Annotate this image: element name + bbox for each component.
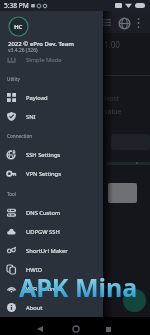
- staticText: Utility: [7, 76, 20, 82]
- staticText: Host: [104, 94, 120, 104]
- button[interactable]: Back: [30, 320, 49, 335]
- staticText: ShortUrl Maker: [26, 247, 68, 255]
- staticText: 5:38 PM: [4, 1, 29, 10]
- staticText: HC: [14, 23, 23, 31]
- staticText: WiFi Settings: [26, 285, 61, 293]
- button[interactable]: Action: [108, 183, 137, 203]
- staticText: SNI: [26, 113, 36, 121]
- button[interactable]: Recents: [99, 320, 118, 335]
- staticText: 2022 © ePro Dev. Team: [8, 40, 74, 48]
- staticText: About: [26, 304, 43, 312]
- button[interactable]: DNS Custom: [0, 203, 103, 222]
- staticText: Simple Mode: [26, 56, 62, 64]
- staticText: Payload: [26, 94, 48, 102]
- button[interactable]: Menu: [101, 17, 112, 28]
- button[interactable]: Home: [66, 320, 85, 335]
- staticText: APK Mina: [19, 270, 138, 304]
- button[interactable]: ShortUrl Maker: [0, 241, 103, 260]
- button[interactable]: About: [0, 298, 103, 317]
- button[interactable]: WiFi Settings: [0, 279, 103, 298]
- staticText: v3.4.26 (326): [8, 47, 38, 54]
- button[interactable]: Connect: [123, 289, 146, 312]
- staticText: DNS Custom: [26, 209, 61, 217]
- button[interactable]: Language: [118, 17, 131, 30]
- staticText: Connection: [7, 133, 33, 139]
- button[interactable]: SSH Settings: [0, 145, 103, 164]
- button[interactable]: Payload: [0, 88, 103, 107]
- button[interactable]: More options: [136, 17, 141, 29]
- staticText: VPN Settings: [26, 170, 61, 178]
- staticText: Tool: [7, 191, 17, 197]
- button[interactable]: VPN Settings: [0, 164, 103, 183]
- staticText: SSH Settings: [26, 151, 61, 159]
- staticText: value: [104, 107, 122, 117]
- staticText: HWID: [26, 266, 42, 274]
- staticText: UDPGW SSH: [26, 228, 60, 236]
- button[interactable]: UDPGW SSH: [0, 222, 103, 241]
- button[interactable]: Simple Mode: [0, 50, 103, 69]
- button[interactable]: SNI: [0, 107, 103, 126]
- button[interactable]: HWID: [0, 260, 103, 279]
- staticText: 1.00: [104, 39, 120, 50]
